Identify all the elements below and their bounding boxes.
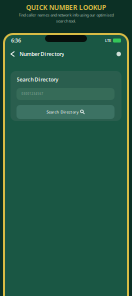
staticText: 6:36 [11,37,21,44]
staticText: Find caller names and network info using… [18,12,113,18]
staticText: Number Directory [19,50,64,58]
staticText: Search Directory [16,76,58,83]
staticText: search tool. [56,18,76,23]
button[interactable]: Search Directory [16,105,114,119]
staticText: LTE [105,38,111,43]
staticText: Search Directory [46,109,78,115]
button[interactable]: Back [11,51,14,56]
staticText: 03001234567 [21,92,43,96]
button[interactable]: More [116,52,121,56]
staticText: QUICK NUMBER LOOKUP [26,3,106,12]
